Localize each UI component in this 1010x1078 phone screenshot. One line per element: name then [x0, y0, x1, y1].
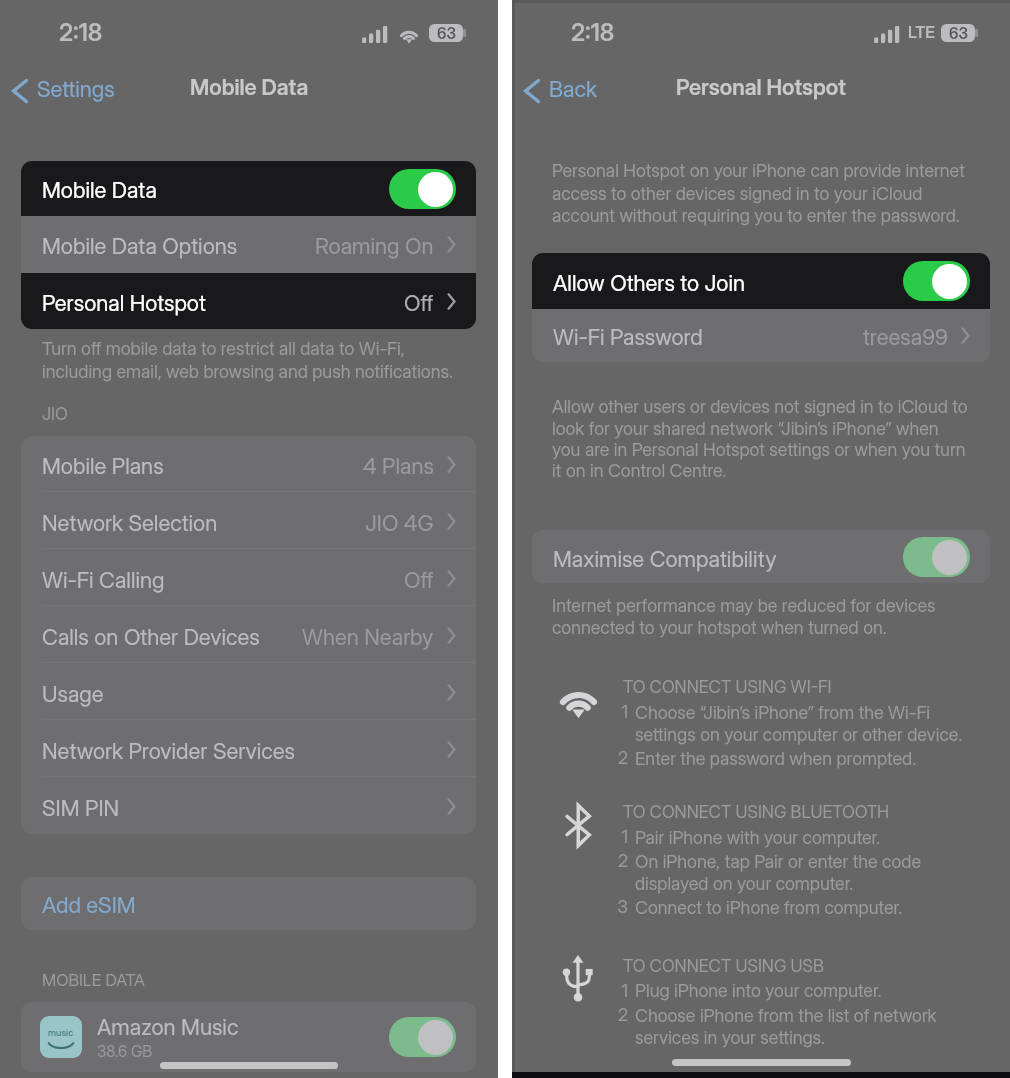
- button[interactable]: Mobile Data: [21, 161, 476, 216]
- staticText: Add eSIM: [42, 892, 136, 919]
- staticText: Mobile Data: [42, 177, 389, 204]
- button[interactable]: Toggle switch: [903, 261, 970, 301]
- staticText: TO CONNECT USING BLUETOOTH: [623, 802, 890, 823]
- staticText: 38.6 GB: [97, 1042, 153, 1061]
- staticText: Amazon Music: [97, 1014, 239, 1041]
- other: Wi-Fi: [552, 675, 604, 725]
- staticText: LTE: [908, 22, 935, 41]
- staticText: Turn off mobile data to restrict all dat…: [42, 338, 453, 382]
- button[interactable]: Mobile Data Options: [21, 216, 476, 273]
- staticText: SIM PIN: [42, 795, 447, 822]
- button[interactable]: Allow Others to Join: [532, 253, 990, 309]
- staticText: Wi-Fi Calling: [42, 567, 404, 594]
- staticText: On iPhone, tap Pair or enter the code di…: [635, 851, 921, 894]
- staticText: JIO 4G: [365, 510, 434, 537]
- button[interactable]: Wi-Fi Calling: [21, 550, 476, 606]
- staticText: treesa99: [863, 324, 948, 351]
- staticText: Network Selection: [42, 510, 365, 537]
- button[interactable]: Toggle switch: [389, 1017, 456, 1057]
- staticText: Personal Hotspot: [676, 74, 846, 100]
- staticText: Off: [404, 567, 434, 594]
- staticText: Back: [549, 76, 598, 103]
- staticText: 2: [613, 1004, 628, 1026]
- staticText: JIO: [42, 404, 68, 425]
- button[interactable]: Network Provider Services: [21, 721, 476, 777]
- staticText: Personal Hotspot: [42, 290, 404, 317]
- staticText: Choose iPhone from the list of network s…: [635, 1005, 937, 1048]
- button[interactable]: Personal Hotspot: [21, 273, 476, 329]
- button[interactable]: Toggle switch: [903, 537, 970, 577]
- staticText: 1: [613, 980, 628, 1002]
- staticText: MOBILE DATA: [42, 970, 145, 990]
- staticText: Personal Hotspot on your iPhone can prov…: [552, 160, 965, 226]
- staticText: Enter the password when prompted.: [635, 748, 917, 770]
- other: USB: [552, 954, 604, 1004]
- staticText: When Nearby: [302, 624, 434, 651]
- staticText: Off: [404, 290, 434, 317]
- staticText: TO CONNECT USING WI-FI: [623, 677, 832, 698]
- staticText: TO CONNECT USING USB: [623, 956, 824, 977]
- staticText: Maximise Compatibility: [553, 546, 903, 573]
- staticText: 4 Plans: [363, 453, 434, 480]
- staticText: Network Provider Services: [42, 738, 447, 765]
- staticText: Plug iPhone into your computer.: [635, 980, 882, 1002]
- staticText: 1: [613, 826, 628, 848]
- button[interactable]: Maximise Compatibility: [532, 530, 990, 583]
- staticText: music: [48, 1027, 74, 1038]
- staticText: Choose “Jibin’s iPhone” from the Wi-Fi s…: [635, 702, 963, 745]
- button[interactable]: Mobile Plans: [21, 436, 476, 492]
- staticText: Internet performance may be reduced for …: [552, 595, 936, 639]
- button[interactable]: Wi-Fi Password: [532, 309, 990, 362]
- staticText: Wi-Fi Password: [553, 324, 863, 351]
- button[interactable]: music: [21, 1002, 476, 1072]
- staticText: Roaming On: [315, 233, 434, 260]
- staticText: Calls on Other Devices: [42, 624, 302, 651]
- other: Bluetooth: [552, 800, 604, 850]
- button[interactable]: SIM PIN: [21, 778, 476, 834]
- staticText: Allow other users or devices not signed …: [552, 396, 968, 481]
- staticText: Mobile Data Options: [42, 233, 315, 260]
- staticText: Pair iPhone with your computer.: [635, 827, 881, 849]
- button[interactable]: Toggle switch: [389, 169, 456, 209]
- staticText: 63: [437, 24, 456, 42]
- staticText: Connect to iPhone from computer.: [635, 897, 903, 919]
- button[interactable]: Settings: [6, 71, 121, 110]
- button[interactable]: Usage: [21, 664, 476, 720]
- staticText: Allow Others to Join: [553, 270, 903, 297]
- staticText: 2:18: [59, 18, 103, 47]
- button[interactable]: Calls on Other Devices: [21, 607, 476, 663]
- button[interactable]: Network Selection: [21, 493, 476, 549]
- staticText: 1: [613, 701, 628, 723]
- staticText: Mobile Plans: [42, 453, 363, 480]
- staticText: Mobile Data: [190, 74, 309, 100]
- staticText: Settings: [37, 76, 115, 103]
- button[interactable]: Add eSIM: [21, 877, 476, 930]
- staticText: 3: [613, 896, 628, 918]
- staticText: Usage: [42, 681, 447, 708]
- staticText: 2: [613, 850, 628, 872]
- staticText: 63: [949, 24, 968, 42]
- staticText: 2:18: [571, 18, 615, 47]
- staticText: 2: [613, 747, 628, 769]
- button[interactable]: Back: [518, 71, 604, 110]
